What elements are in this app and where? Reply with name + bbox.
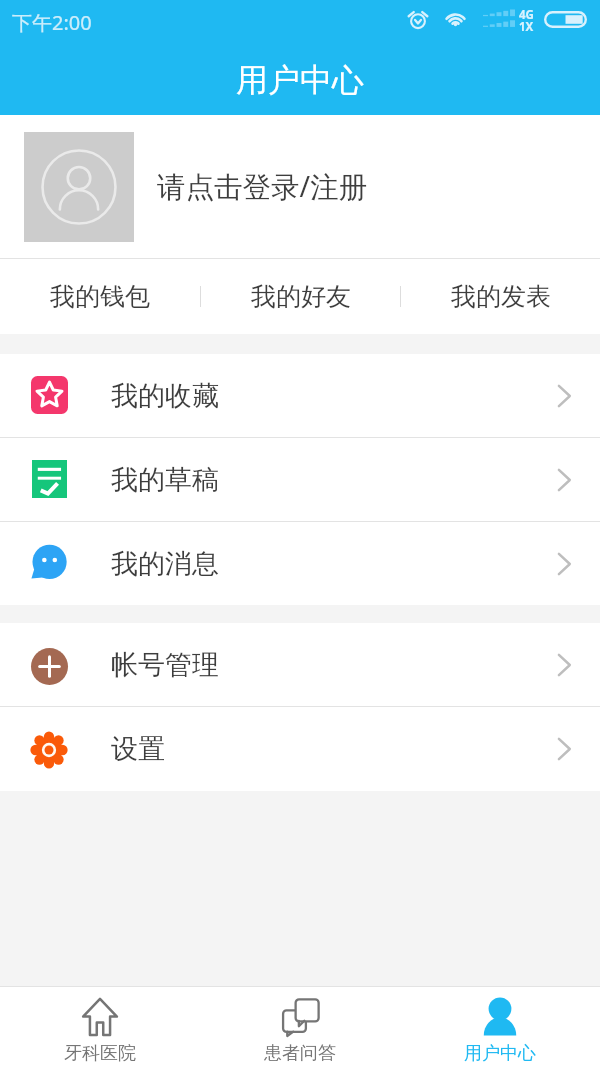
- staticText: 我的发表: [451, 281, 551, 312]
- button[interactable]: 我的草稿: [0, 438, 600, 521]
- staticText: 我的收藏: [111, 379, 219, 413]
- button[interactable]: 用户中心: [400, 987, 600, 1067]
- staticText: 帐号管理: [111, 648, 219, 682]
- staticText: 1X: [519, 19, 534, 35]
- button[interactable]: 我的消息: [0, 522, 600, 605]
- staticText: 牙科医院: [64, 1042, 136, 1065]
- button[interactable]: 我的发表: [401, 259, 600, 334]
- staticText: 用户中心: [236, 60, 364, 100]
- button[interactable]: 牙科医院: [0, 987, 200, 1067]
- button[interactable]: 我的收藏: [0, 354, 600, 437]
- staticText: 我的草稿: [111, 463, 219, 497]
- staticText: 下午2:00: [12, 9, 92, 36]
- button[interactable]: 设置: [0, 707, 600, 791]
- staticText: 请点击登录/注册: [157, 167, 368, 206]
- staticText: 4G: [519, 7, 534, 23]
- staticText: 患者问答: [264, 1042, 336, 1065]
- button[interactable]: 我的好友: [201, 259, 400, 334]
- button[interactable]: 头像: [24, 132, 134, 242]
- staticText: 我的好友: [251, 281, 351, 312]
- button[interactable]: 我的钱包: [0, 259, 200, 334]
- button[interactable]: 患者问答: [200, 987, 400, 1067]
- staticText: 我的消息: [111, 547, 219, 581]
- button[interactable]: 帐号管理: [0, 623, 600, 706]
- staticText: 设置: [111, 732, 165, 766]
- staticText: 用户中心: [464, 1042, 536, 1065]
- button[interactable]: 头像: [0, 115, 600, 258]
- staticText: 我的钱包: [50, 281, 150, 312]
